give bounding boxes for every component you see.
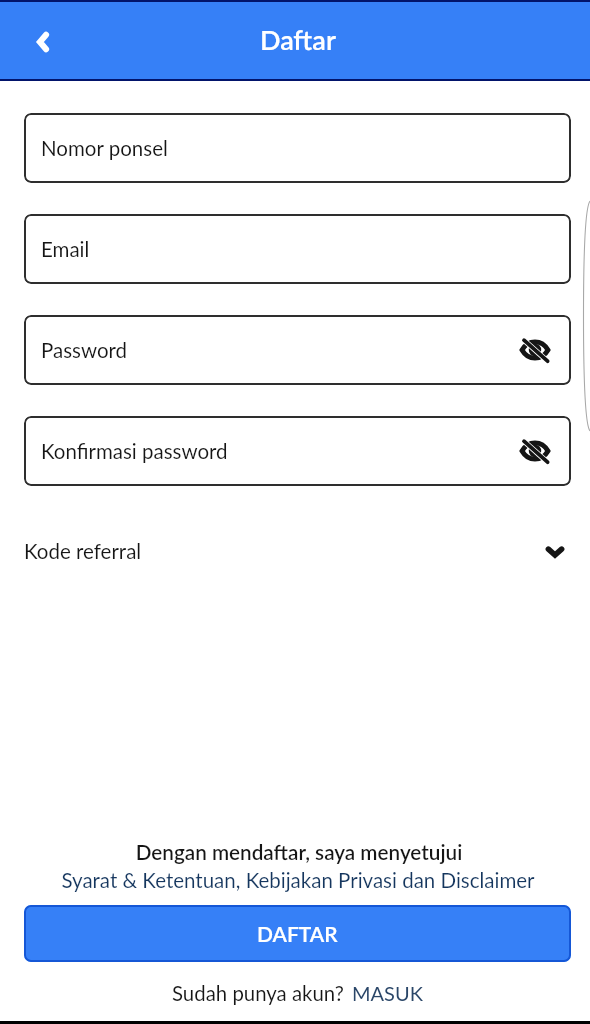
button[interactable]: Password (24, 315, 571, 385)
button[interactable]: Back (20, 19, 66, 65)
staticText: Password (41, 338, 128, 363)
button[interactable]: DAFTAR (24, 905, 571, 962)
button[interactable]: Toggle password visibility (515, 431, 555, 471)
staticText: Dengan mendaftar, saya menyetujui (4, 840, 590, 865)
button[interactable]: Nomor ponsel (24, 113, 571, 183)
button[interactable]: Toggle password visibility (515, 330, 555, 370)
staticText: Daftar (260, 23, 336, 55)
staticText: Kode referral (24, 539, 142, 564)
staticText: Sudah punya akun? (172, 981, 344, 1005)
button[interactable]: Email (24, 214, 571, 284)
button[interactable]: Kode referral (0, 527, 590, 577)
staticText: Nomor ponsel (41, 136, 168, 161)
staticText: MASUK (352, 981, 423, 1005)
button[interactable]: MASUK (352, 981, 423, 1005)
staticText: Konfirmasi password (41, 439, 228, 464)
staticText: DAFTAR (257, 921, 338, 946)
staticText: Email (41, 237, 90, 262)
button[interactable]: Konfirmasi password (24, 416, 571, 486)
button[interactable]: Syarat & Ketentuan, Kebijakan Privasi da… (3, 868, 590, 893)
